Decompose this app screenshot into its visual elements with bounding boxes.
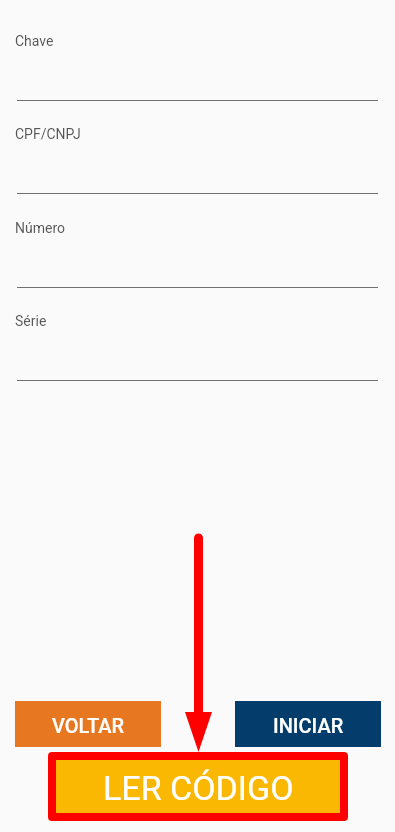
button[interactable]	[0, 114, 395, 201]
staticText: Série	[15, 313, 47, 329]
button[interactable]	[0, 208, 395, 295]
staticText: Chave	[15, 33, 54, 49]
button[interactable]	[0, 21, 395, 108]
button[interactable]: LER CÓDIGO	[56, 760, 340, 813]
staticText: VOLTAR	[52, 714, 125, 737]
button[interactable]: INICIAR	[235, 701, 381, 747]
button[interactable]: VOLTAR	[15, 701, 161, 747]
button[interactable]	[0, 301, 395, 388]
other: Arrow pointing to LER CÓDIGO	[183, 532, 215, 754]
staticText: CPF/CNPJ	[15, 126, 81, 142]
staticText: Número	[15, 220, 65, 236]
staticText: LER CÓDIGO	[103, 768, 294, 808]
staticText: INICIAR	[273, 714, 344, 737]
